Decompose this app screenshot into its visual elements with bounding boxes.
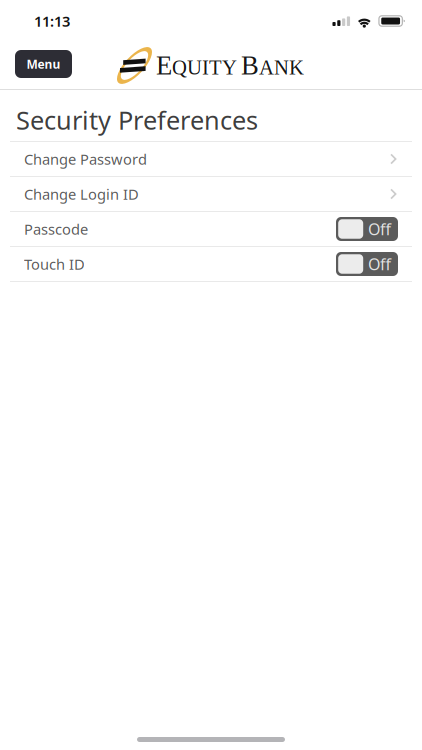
staticText: Security Preferences bbox=[16, 103, 258, 137]
button[interactable]: Toggle off bbox=[336, 252, 398, 276]
button[interactable]: Change Login ID bbox=[0, 177, 422, 211]
staticText: Change Password bbox=[24, 149, 147, 169]
button[interactable]: Menu bbox=[15, 50, 72, 78]
staticText: Passcode bbox=[24, 219, 88, 239]
button[interactable]: Change Password bbox=[0, 142, 422, 176]
staticText: Touch ID bbox=[24, 254, 85, 274]
staticText: Off bbox=[368, 218, 391, 240]
staticText: Off bbox=[368, 253, 391, 275]
staticText: Menu bbox=[26, 56, 60, 72]
staticText: 11:13 bbox=[34, 11, 70, 31]
staticText: Change Login ID bbox=[24, 184, 139, 204]
staticText: EQUITY BANK bbox=[156, 51, 304, 80]
button[interactable]: Toggle off bbox=[336, 217, 398, 241]
